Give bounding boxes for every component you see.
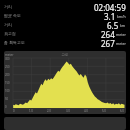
- button[interactable]: 총 획득고도: [4, 38, 126, 47]
- staticText: 0: [13, 109, 15, 113]
- staticText: 최고점: [4, 31, 16, 36]
- staticText: 총 획득고도: [4, 40, 26, 45]
- button[interactable]: 최고점: [4, 29, 126, 38]
- staticText: 5.0: [102, 109, 106, 113]
- button[interactable]: 평균 속도: [4, 11, 126, 20]
- staticText: 3.1: [104, 11, 116, 20]
- staticText: 0: [5, 105, 7, 109]
- staticText: 250: [5, 65, 10, 69]
- staticText: 1.0: [29, 109, 33, 113]
- staticText: 100: [5, 89, 10, 93]
- staticText: 50: [5, 97, 8, 101]
- staticText: 거리: [4, 22, 12, 27]
- staticText: meter: [5, 53, 14, 57]
- button[interactable]: 거리: [4, 2, 126, 11]
- button[interactable]: Elevation profile chart: [4, 51, 126, 114]
- staticText: 02:04:59: [94, 2, 126, 11]
- staticText: meter: [116, 32, 126, 37]
- staticText: meter: [116, 41, 126, 46]
- staticText: 150: [5, 81, 10, 85]
- staticText: 200: [5, 73, 10, 77]
- staticText: 3.0: [66, 109, 70, 113]
- staticText: km/h: [117, 14, 126, 19]
- staticText: 2.0: [47, 109, 51, 113]
- staticText: 267: [101, 38, 115, 47]
- staticText: 300: [5, 57, 10, 61]
- staticText: 고도: [4, 53, 126, 57]
- button[interactable]: 거리: [4, 20, 126, 29]
- staticText: 평균 속도: [4, 13, 22, 18]
- staticText: 거리: [4, 4, 12, 9]
- staticText: km: [120, 23, 126, 28]
- staticText: 6.0: [120, 109, 124, 113]
- staticText: 4.0: [84, 109, 88, 113]
- staticText: 264: [101, 29, 115, 38]
- staticText: 6.5: [107, 20, 119, 29]
